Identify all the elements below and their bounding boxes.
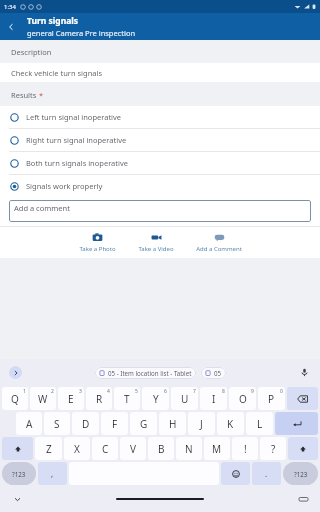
staticText: 7 <box>193 388 196 395</box>
button[interactable]: ?123 <box>2 462 36 485</box>
button[interactable]: F <box>101 412 128 435</box>
button[interactable]: Y <box>142 387 169 410</box>
staticText: K <box>227 417 234 431</box>
button[interactable]: R <box>86 387 112 410</box>
staticText: V <box>130 442 136 456</box>
staticText: Results <box>11 90 37 100</box>
staticText: F <box>112 417 118 431</box>
button[interactable]: Left turn signal inoperative <box>0 106 320 128</box>
staticText: P <box>268 392 275 406</box>
button[interactable]: Voice input <box>298 366 311 379</box>
button[interactable]: A <box>16 412 42 435</box>
button[interactable]: Z <box>35 437 62 460</box>
staticText: 6 <box>164 388 167 395</box>
button[interactable]: Both turn signals inoperative <box>0 152 320 174</box>
staticText: 05 <box>214 369 222 377</box>
staticText: G <box>140 417 148 431</box>
staticText: 05 - Item location list - Tablet <box>108 369 192 377</box>
button[interactable]: O <box>229 387 256 410</box>
staticText: Turn signals <box>27 15 79 27</box>
staticText: * <box>39 90 44 100</box>
staticText: Description <box>11 47 52 57</box>
button[interactable]: G <box>130 412 157 435</box>
staticText: D <box>82 417 90 431</box>
staticText: Left turn signal inoperative <box>26 112 122 122</box>
button[interactable]: S <box>44 412 70 435</box>
button[interactable]: K <box>217 412 244 435</box>
button[interactable]: Take a Photo <box>75 231 120 254</box>
button[interactable]: C <box>92 437 118 460</box>
button[interactable]: H <box>159 412 186 435</box>
staticText: . <box>265 468 268 479</box>
button[interactable]: 05 <box>201 367 226 379</box>
staticText: S <box>54 417 60 431</box>
staticText: 0 <box>280 388 283 395</box>
button[interactable]: Emoji <box>221 462 250 485</box>
button[interactable]: ?123 <box>283 462 318 485</box>
button[interactable]: ! <box>232 437 258 460</box>
staticText: J <box>200 417 203 431</box>
staticText: Signals work properly <box>26 181 103 191</box>
staticText: ?123 <box>294 470 308 478</box>
button[interactable]: , <box>38 462 67 485</box>
staticText: 1 <box>23 388 26 395</box>
staticText: Right turn signal inoperative <box>26 135 127 145</box>
staticText: ? <box>271 442 276 456</box>
button[interactable]: 05 - Item location list - Tablet <box>95 367 196 379</box>
staticText: X <box>74 442 80 456</box>
button[interactable]: M <box>204 437 230 460</box>
button[interactable]: Enter <box>275 412 318 435</box>
button[interactable]: J <box>188 412 215 435</box>
staticText: L <box>257 417 263 431</box>
button[interactable]: W <box>30 387 56 410</box>
staticText: Add a Comment <box>196 245 242 253</box>
button[interactable]: Shift <box>2 437 33 460</box>
staticText: , <box>51 468 54 479</box>
button[interactable]: P <box>258 387 285 410</box>
button[interactable]: Shift <box>288 437 318 460</box>
staticText: Both turn signals inoperative <box>26 158 128 168</box>
staticText: T <box>124 392 130 406</box>
button[interactable]: Hide keyboard <box>11 493 23 505</box>
staticText: 3 <box>79 388 82 395</box>
button[interactable]: B <box>148 437 174 460</box>
button[interactable]: E <box>58 387 84 410</box>
staticText: R <box>96 392 103 406</box>
staticText: C <box>102 442 109 456</box>
staticText: Add a comment <box>14 203 70 213</box>
staticText: Take a Video <box>138 245 174 253</box>
button[interactable]: . <box>252 462 281 485</box>
staticText: O <box>239 392 247 406</box>
button[interactable]: V <box>120 437 146 460</box>
staticText: ?123 <box>12 470 26 478</box>
button[interactable]: U <box>171 387 198 410</box>
staticText: 8 <box>222 388 225 395</box>
button[interactable]: N <box>176 437 202 460</box>
staticText: W <box>38 392 48 406</box>
staticText: U <box>181 392 189 406</box>
button[interactable]: ? <box>260 437 286 460</box>
button[interactable]: Back <box>0 16 22 38</box>
staticText: M <box>212 442 222 456</box>
staticText: Check vehicle turn signals <box>11 68 103 78</box>
button[interactable]: Add a Comment <box>192 231 246 254</box>
button[interactable]: Right turn signal inoperative <box>0 129 320 151</box>
button[interactable]: Take a Video <box>134 231 178 254</box>
button[interactable]: L <box>246 412 273 435</box>
button[interactable]: T <box>114 387 140 410</box>
staticText: E <box>68 392 74 406</box>
staticText: H <box>169 417 177 431</box>
button[interactable]: Switch keyboard <box>297 493 309 505</box>
button[interactable]: Signals work properly <box>0 175 320 197</box>
staticText: I <box>212 392 216 406</box>
button[interactable]: I <box>200 387 227 410</box>
button[interactable]: X <box>64 437 90 460</box>
button[interactable]: Add a comment <box>9 200 311 222</box>
staticText: A <box>26 417 33 431</box>
button[interactable]: Expand <box>9 366 22 379</box>
button[interactable]: Backspace <box>287 387 318 410</box>
button[interactable]: Q <box>2 387 28 410</box>
button[interactable]: D <box>72 412 99 435</box>
staticText: general Camera Pre inspection <box>27 28 136 38</box>
